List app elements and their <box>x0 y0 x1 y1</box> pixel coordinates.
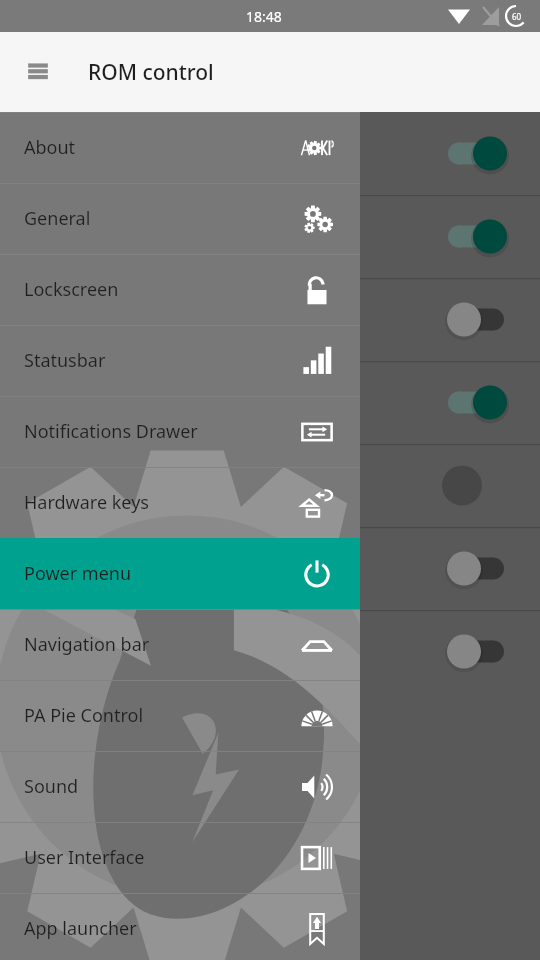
staticText: 18:48 <box>246 7 282 26</box>
button[interactable]: Statusbar <box>0 325 360 396</box>
staticText: Sound <box>24 639 79 664</box>
staticText: Sound <box>24 774 79 799</box>
button[interactable]: User switcher <box>0 444 540 527</box>
staticText: About <box>24 135 76 160</box>
staticText: General <box>24 206 91 231</box>
staticText: Device lockdown <box>24 556 165 581</box>
button[interactable]: Open navigation drawer <box>12 46 64 98</box>
staticText: Power menu <box>24 561 132 586</box>
button[interactable]: Lockscreen <box>0 254 360 325</box>
button[interactable]: About <box>0 112 360 183</box>
button[interactable]: Sound <box>0 751 360 822</box>
staticText: Notifications Drawer <box>24 419 198 444</box>
button[interactable]: Device lockdown <box>0 527 540 610</box>
staticText: Lockscreen <box>24 277 119 302</box>
button[interactable]: Airplane mode <box>0 361 540 444</box>
staticText: ROM control <box>88 58 214 87</box>
staticText: Reboot menu <box>24 141 139 166</box>
staticText: Statusbar <box>24 348 106 373</box>
staticText: 60 <box>512 11 522 22</box>
staticText: User Interface <box>24 845 145 870</box>
button[interactable]: Reboot menu <box>0 112 540 195</box>
staticText: PA Pie Control <box>24 703 144 728</box>
button[interactable]: Screenshot <box>0 195 540 278</box>
button[interactable]: Screenrecord <box>0 278 540 361</box>
staticText: App launcher <box>24 916 137 941</box>
button[interactable]: Hardware keys <box>0 467 360 538</box>
staticText: Hardware keys <box>24 490 149 515</box>
button[interactable]: PA Pie Control <box>0 680 360 751</box>
button[interactable]: Power menu <box>0 538 360 609</box>
staticText: User switcher <box>24 473 140 498</box>
button[interactable]: App launcher <box>0 893 360 960</box>
staticText: Screenshot <box>24 224 119 249</box>
button[interactable]: General <box>0 183 360 254</box>
button[interactable]: User Interface <box>0 822 360 893</box>
button[interactable]: Sound <box>0 610 540 693</box>
button[interactable]: Navigation bar <box>0 609 360 680</box>
staticText: Navigation bar <box>24 632 150 657</box>
button[interactable]: Notifications Drawer <box>0 396 360 467</box>
